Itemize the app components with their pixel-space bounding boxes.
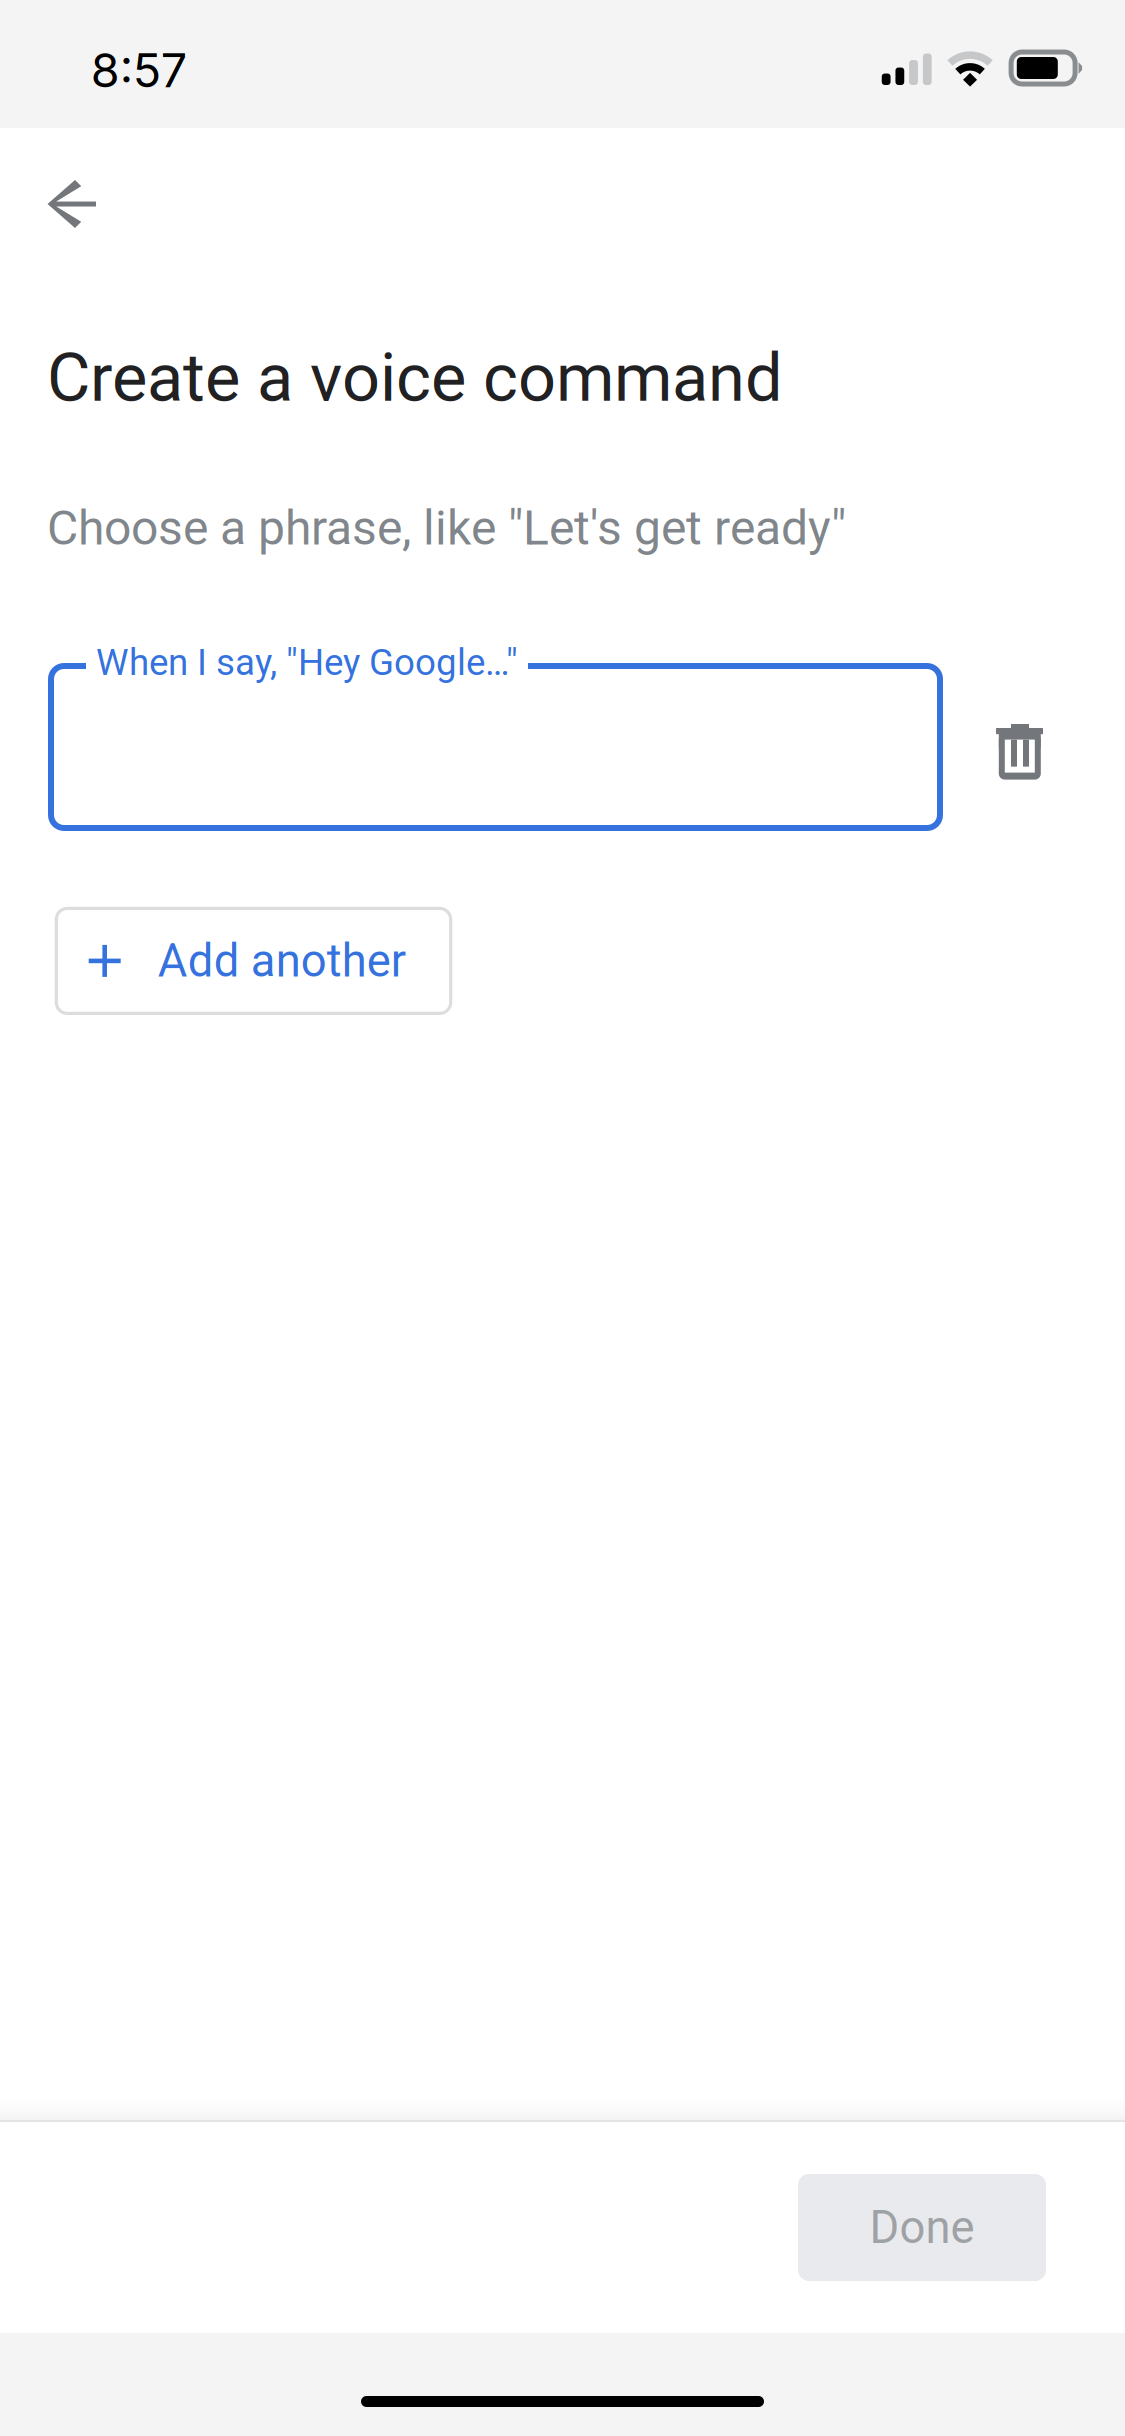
staticText: Choose a phrase, like "Let's get ready" <box>47 500 846 556</box>
staticText: When I say, "Hey Google…" <box>96 641 518 684</box>
staticText: Create a voice command <box>47 339 783 417</box>
button[interactable]: Done <box>798 2174 1046 2281</box>
button[interactable]: Delete phrase <box>976 704 1063 799</box>
button[interactable]: Back <box>0 128 132 264</box>
staticText: Add another <box>158 934 406 987</box>
button[interactable]: Add another <box>56 908 451 1013</box>
staticText: 8:57 <box>91 42 187 98</box>
staticText: Done <box>869 2201 974 2254</box>
